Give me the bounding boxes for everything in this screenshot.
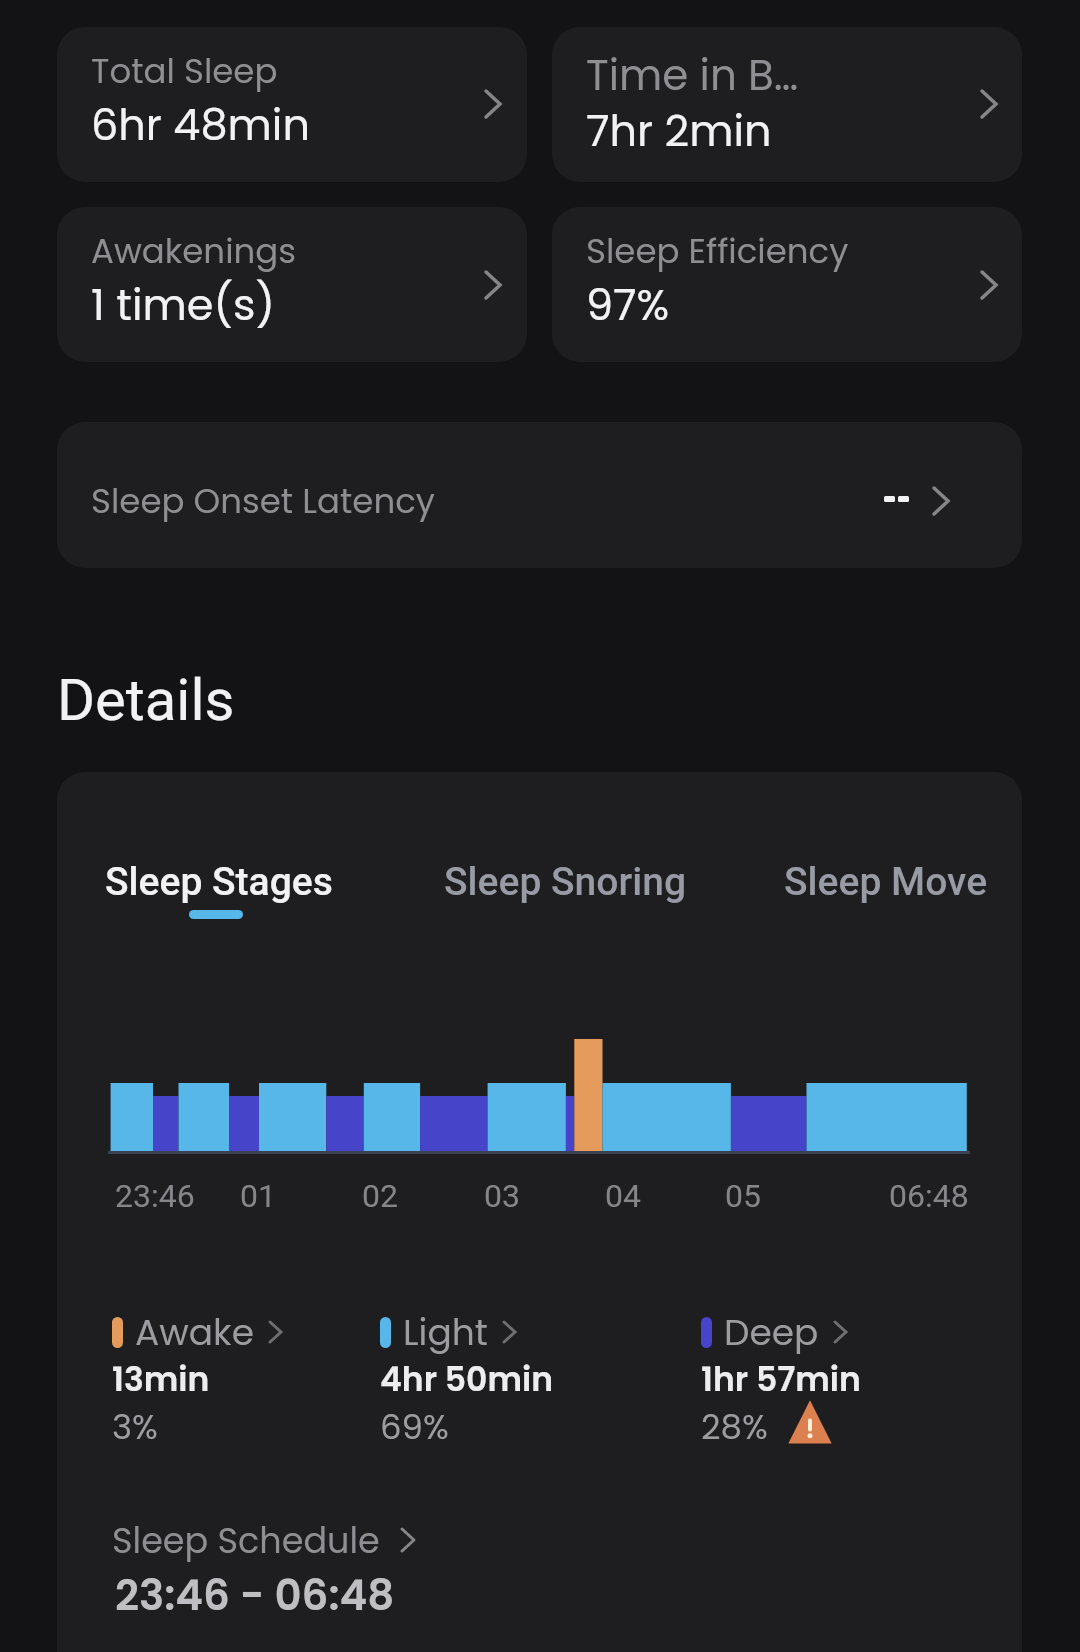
staticText: Awake [135,1307,254,1357]
button[interactable]: Light [380,1306,515,1358]
staticText: 28% [701,1403,768,1451]
staticText: Sleep Movement [784,859,987,905]
staticText: 05 [725,1177,761,1215]
staticText: 06:48 [889,1177,969,1215]
button[interactable] [57,27,527,182]
staticText: 69% [380,1403,449,1451]
staticText: Sleep Onset Latency [91,477,435,525]
staticText: Time in B… [586,46,799,105]
button[interactable] [57,422,1022,568]
staticText: Sleep Stages [105,859,333,905]
staticText: 04 [605,1177,641,1215]
staticText: 13min [112,1356,210,1402]
button[interactable] [552,207,1022,362]
button[interactable]: Sleep Snoring [444,847,686,917]
staticText: 7hr 2min [586,101,772,161]
staticText: 02 [362,1177,398,1215]
staticText: 23:46 - 06:48 [115,1566,395,1625]
staticText: 01 [240,1177,276,1215]
staticText: 23:46 [115,1177,195,1215]
staticText: Deep [724,1307,819,1357]
staticText: 4hr 50min [380,1356,553,1402]
staticText: Sleep Schedule [112,1516,380,1565]
staticText: 1hr 57min [701,1356,861,1402]
button[interactable]: Awake [112,1306,281,1358]
staticText: Sleep Snoring [444,859,686,905]
staticText: Awakenings [91,227,296,275]
button[interactable]: Deep [701,1306,846,1358]
staticText: Details [57,666,235,734]
staticText: 1 time(s) [91,275,275,335]
staticText: 03 [484,1177,520,1215]
staticText: 3% [112,1403,158,1451]
button[interactable]: Sleep Stages [105,847,333,917]
button[interactable] [552,27,1022,182]
staticText: 97% [586,275,670,335]
button[interactable]: Sleep Schedule [112,1505,414,1575]
staticText: Light [403,1307,488,1357]
staticText: Total Sleep [91,47,278,95]
button[interactable]: Sleep Movement [784,847,987,917]
staticText: Sleep Efficiency [586,227,849,275]
staticText: 6hr 48min [91,95,310,155]
button[interactable] [57,207,527,362]
